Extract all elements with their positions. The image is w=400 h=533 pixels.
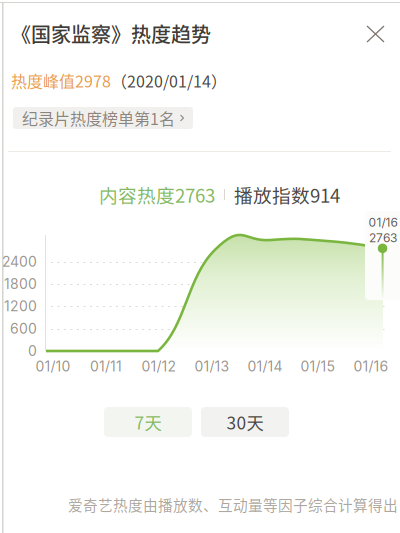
button[interactable]: 纪录片热度榜单第1名 (13, 107, 193, 129)
staticText: 01/14 (247, 358, 282, 375)
staticText: 01/11 (90, 358, 122, 375)
staticText: 2400 (2, 253, 37, 270)
staticText: 2763 (369, 230, 397, 245)
staticText: 0 (28, 342, 37, 359)
staticText: 内容热度2763 (99, 181, 215, 208)
staticText: 纪录片热度榜单第1名 (22, 106, 175, 130)
staticText: 1800 (4, 275, 37, 292)
staticText: 01/13 (194, 358, 229, 375)
staticText: 01/10 (35, 358, 70, 375)
staticText: 《国家监察》热度趋势 (11, 19, 211, 48)
button[interactable]: 30天 (201, 407, 289, 437)
staticText: 600 (10, 320, 37, 337)
staticText: 01/16 (353, 358, 388, 375)
staticText: 热度峰值2978 (11, 69, 111, 92)
staticText: 1200 (4, 298, 37, 315)
staticText: 爱奇艺热度由播放数、互动量等因子综合计算得出 (68, 494, 398, 515)
staticText: 01/15 (300, 358, 335, 375)
staticText: 30天 (226, 409, 263, 435)
staticText: 播放指数914 (234, 181, 340, 208)
staticText: （2020/01/14） (111, 69, 227, 92)
staticText: 01/16 (368, 215, 397, 229)
staticText: 7天 (134, 409, 161, 435)
button[interactable]: Close (356, 15, 395, 53)
button[interactable]: 7天 (104, 407, 192, 437)
staticText: 01/12 (141, 358, 176, 375)
